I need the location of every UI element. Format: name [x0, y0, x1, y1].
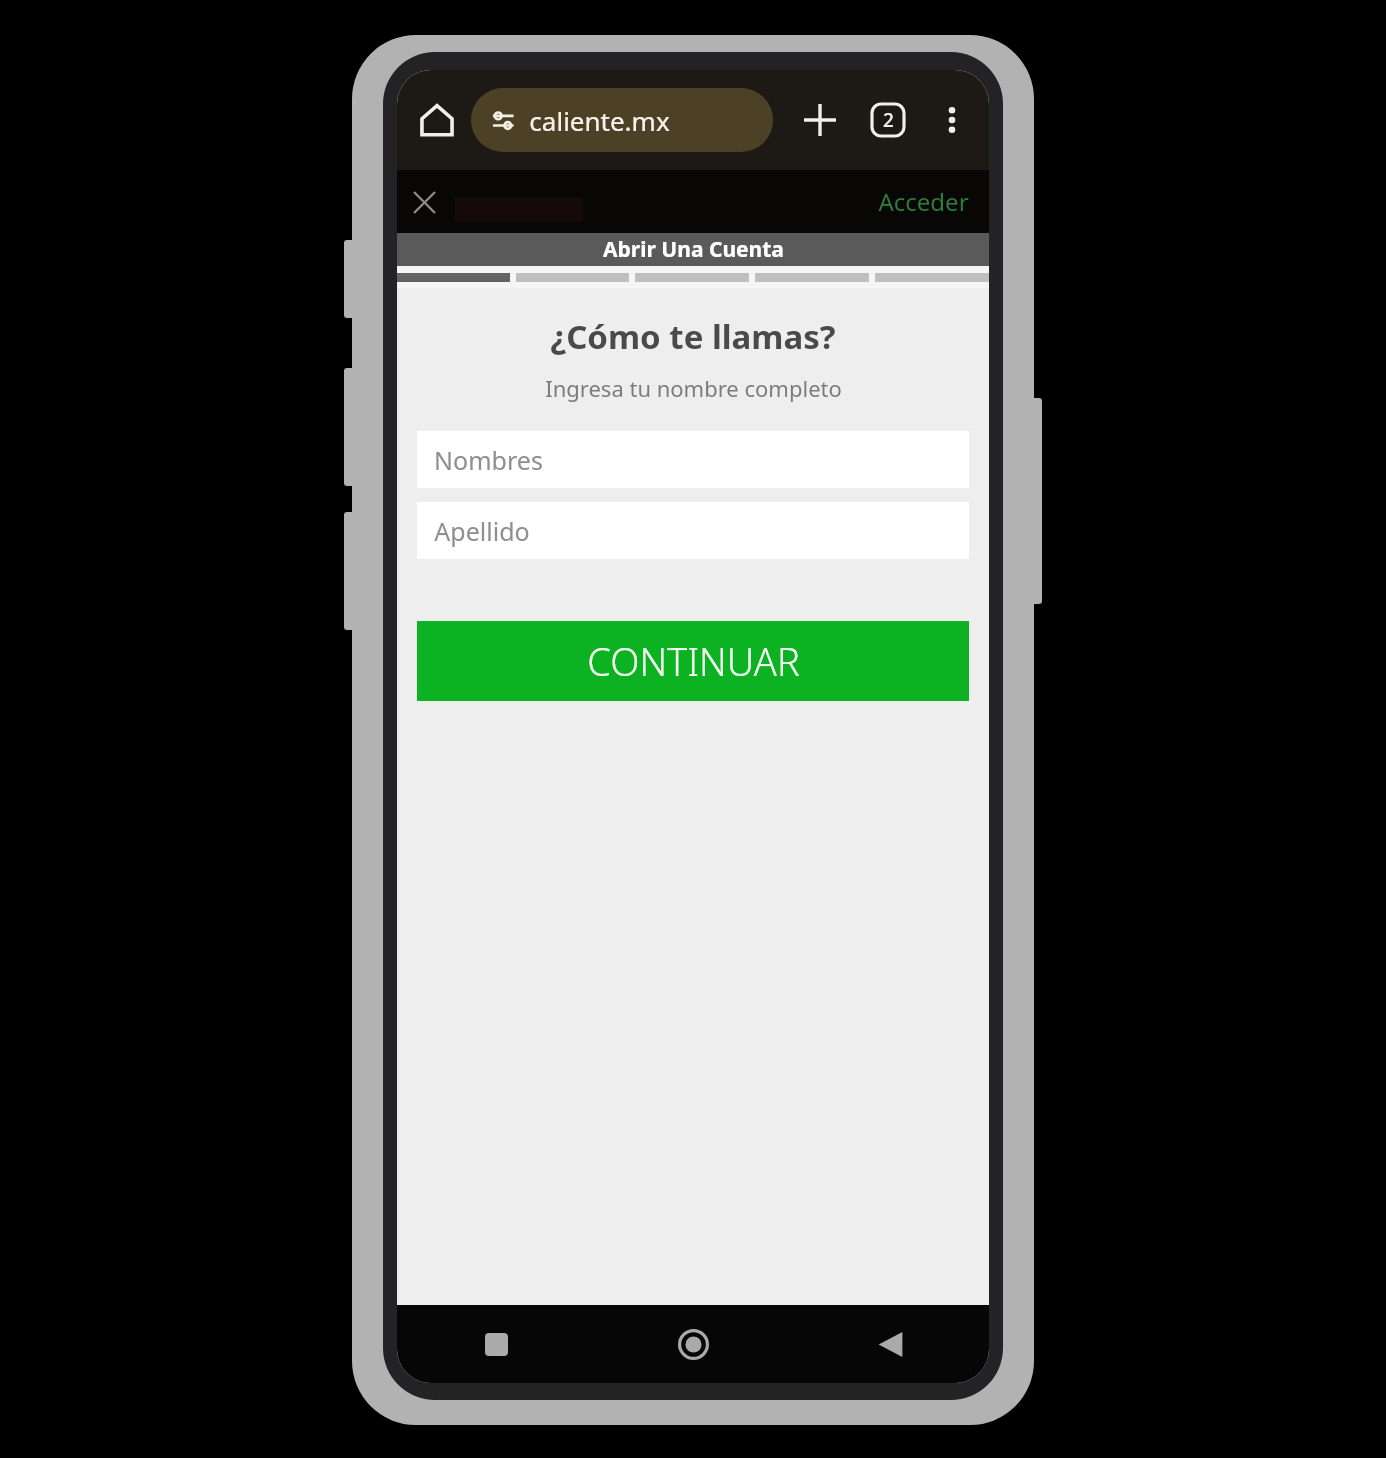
button[interactable]: Home: [595, 1305, 792, 1383]
button[interactable]: More options: [927, 95, 977, 145]
button[interactable]: Recent apps: [397, 1305, 595, 1383]
staticText: CONTINUAR: [587, 635, 800, 687]
button[interactable]: Home: [409, 92, 465, 148]
button[interactable]: CONTINUAR: [417, 621, 969, 701]
staticText: 2: [883, 107, 894, 133]
staticText: Abrir Una Cuenta: [603, 235, 784, 264]
button[interactable]: Nombres: [417, 431, 969, 488]
staticText: Acceder: [878, 185, 969, 218]
staticText: caliente.mx: [529, 103, 670, 138]
button[interactable]: Back: [792, 1305, 989, 1383]
button[interactable]: Close banner: [403, 181, 445, 223]
button[interactable]: Acceder: [870, 179, 977, 224]
staticText: Ingresa tu nombre completo: [545, 373, 842, 403]
button[interactable]: Apellido: [417, 502, 969, 559]
button[interactable]: Open tabs: 2: [861, 93, 915, 147]
staticText: Nombres: [434, 443, 543, 477]
staticText: ¿Cómo te llamas?: [550, 314, 836, 359]
button[interactable]: New tab: [793, 93, 847, 147]
staticText: Apellido: [434, 514, 530, 548]
button[interactable]: caliente.mx: [471, 88, 773, 152]
